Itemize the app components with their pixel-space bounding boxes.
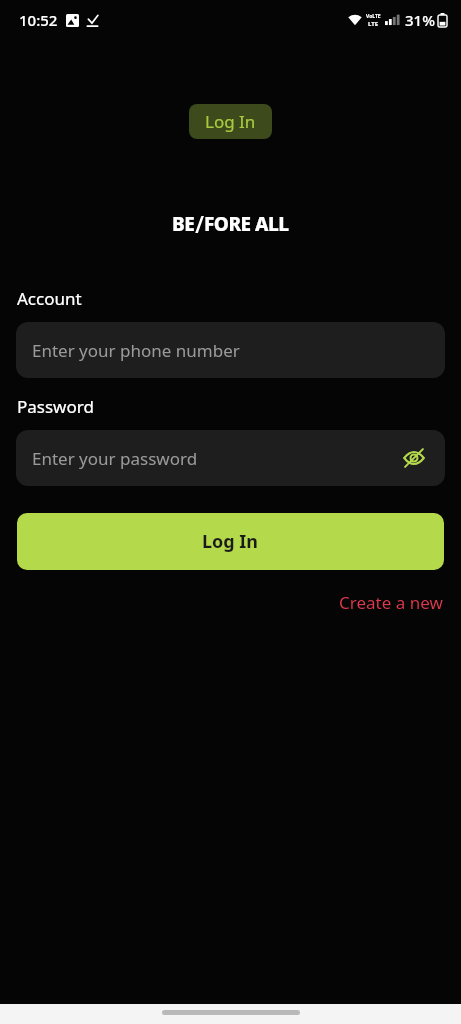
- button[interactable]: Enter your phone number: [16, 322, 445, 378]
- button[interactable]: Create a new: [321, 587, 461, 618]
- staticText: Enter your phone number: [32, 339, 240, 362]
- staticText: 31%: [405, 10, 435, 30]
- staticText: 10:52: [19, 10, 58, 30]
- staticText: LTE: [368, 20, 379, 28]
- staticText: Enter your password: [32, 447, 198, 470]
- staticText: Create a new: [339, 591, 443, 614]
- button[interactable]: Enter your password: [16, 430, 445, 486]
- staticText: BE: [172, 211, 195, 237]
- staticText: FORE ALL: [204, 211, 289, 237]
- button[interactable]: Show password: [397, 441, 431, 475]
- staticText: Account: [17, 287, 82, 310]
- button[interactable]: Log In: [17, 513, 444, 570]
- staticText: Log In: [202, 529, 259, 554]
- button[interactable]: Log In: [189, 104, 272, 139]
- staticText: Log In: [205, 110, 256, 133]
- staticText: Password: [17, 395, 94, 418]
- staticText: VoLTE: [366, 13, 381, 20]
